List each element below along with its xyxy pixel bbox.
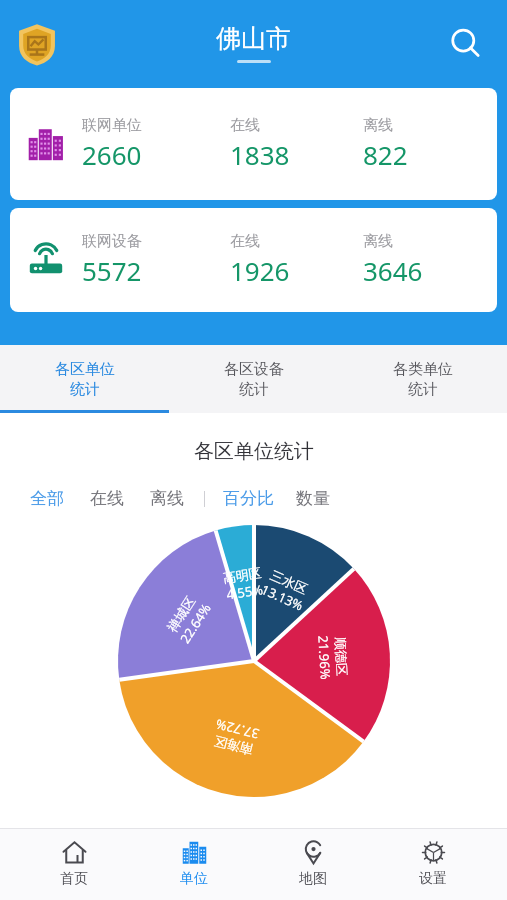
staticText: 13.13% (258, 580, 306, 615)
staticText: 1926 (230, 253, 290, 288)
staticText: 统计 (70, 380, 100, 399)
staticText: 地图 (299, 870, 327, 888)
button[interactable]: 首页 (28, 834, 120, 894)
staticText: 离线 (363, 232, 393, 251)
staticText: 离线 (363, 116, 393, 135)
staticText: 3646 (363, 253, 423, 288)
button[interactable]: 百分比 (223, 484, 274, 513)
staticText: 1838 (230, 137, 290, 172)
staticText: 各类单位 (393, 360, 453, 379)
staticText: 设置 (419, 870, 447, 888)
staticText: 统计 (239, 380, 269, 399)
staticText: 统计 (408, 380, 438, 399)
staticText: 在线 (230, 116, 260, 135)
button[interactable]: 各区设备 (169, 345, 338, 413)
button[interactable]: 离线 (150, 484, 184, 513)
staticText: 37.72% (213, 715, 261, 743)
button[interactable]: 各区单位 (0, 345, 169, 413)
staticText: 禅城区 (164, 593, 198, 635)
staticText: 2660 (82, 137, 142, 172)
button[interactable]: 设置 (387, 834, 479, 894)
staticText: 各区设备 (224, 360, 284, 379)
staticText: 5572 (82, 253, 142, 288)
staticText: 首页 (60, 870, 88, 888)
button[interactable]: 联网单位 (10, 88, 497, 200)
staticText: 22.64% (175, 600, 215, 647)
button[interactable]: 联网设备 (10, 208, 497, 312)
staticText: 三水区 (268, 567, 310, 597)
staticText: 南海区 (212, 733, 254, 758)
staticText: 高明区 (222, 564, 263, 586)
staticText: 21.96% (314, 634, 335, 680)
staticText: 各区单位 (55, 360, 115, 379)
button[interactable]: 数量 (296, 484, 330, 513)
button[interactable]: 在线 (90, 484, 124, 513)
staticText: 联网单位 (82, 116, 142, 135)
staticText: 联网设备 (82, 232, 142, 251)
staticText: 顺德区 (332, 637, 351, 676)
staticText: 各区单位统计 (194, 439, 314, 464)
button[interactable]: App logo (14, 21, 60, 67)
button[interactable]: 各类单位 (338, 345, 507, 413)
staticText: 单位 (180, 870, 208, 888)
staticText: 在线 (230, 232, 260, 251)
staticText: 百分比 (223, 488, 274, 509)
staticText: 佛山市 (216, 23, 291, 54)
button[interactable]: Search (445, 23, 487, 65)
staticText: 全部 (30, 488, 64, 509)
staticText: 离线 (150, 488, 184, 509)
button[interactable]: 单位 (148, 834, 240, 894)
button[interactable]: 全部 (30, 484, 64, 513)
button[interactable]: 地图 (267, 834, 359, 894)
staticText: 4.55% (225, 580, 264, 603)
staticText: 数量 (296, 488, 330, 509)
staticText: 在线 (90, 488, 124, 509)
staticText: 822 (363, 137, 408, 172)
